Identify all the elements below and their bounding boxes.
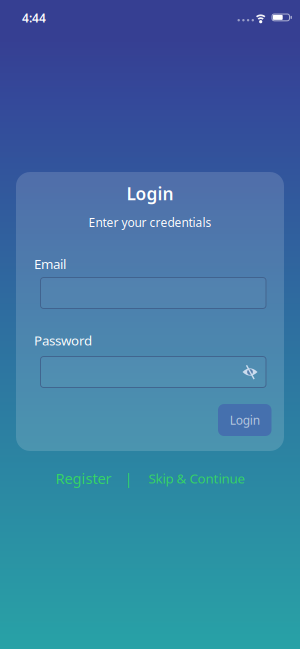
staticText: Register [55,468,111,488]
staticText: Password [34,331,92,349]
staticText: Login [126,182,173,205]
button[interactable]: Skip & Continue [148,469,245,487]
button[interactable]: Login [218,404,271,436]
button[interactable]: Register [55,468,111,488]
button[interactable]: Show password [241,363,266,380]
staticText: Skip & Continue [148,469,245,487]
staticText: Enter your credentials [88,214,211,230]
staticText: Email [34,255,66,273]
staticText: Login [230,412,260,428]
staticText: | [124,468,132,488]
staticText: 4:44 [22,10,46,26]
